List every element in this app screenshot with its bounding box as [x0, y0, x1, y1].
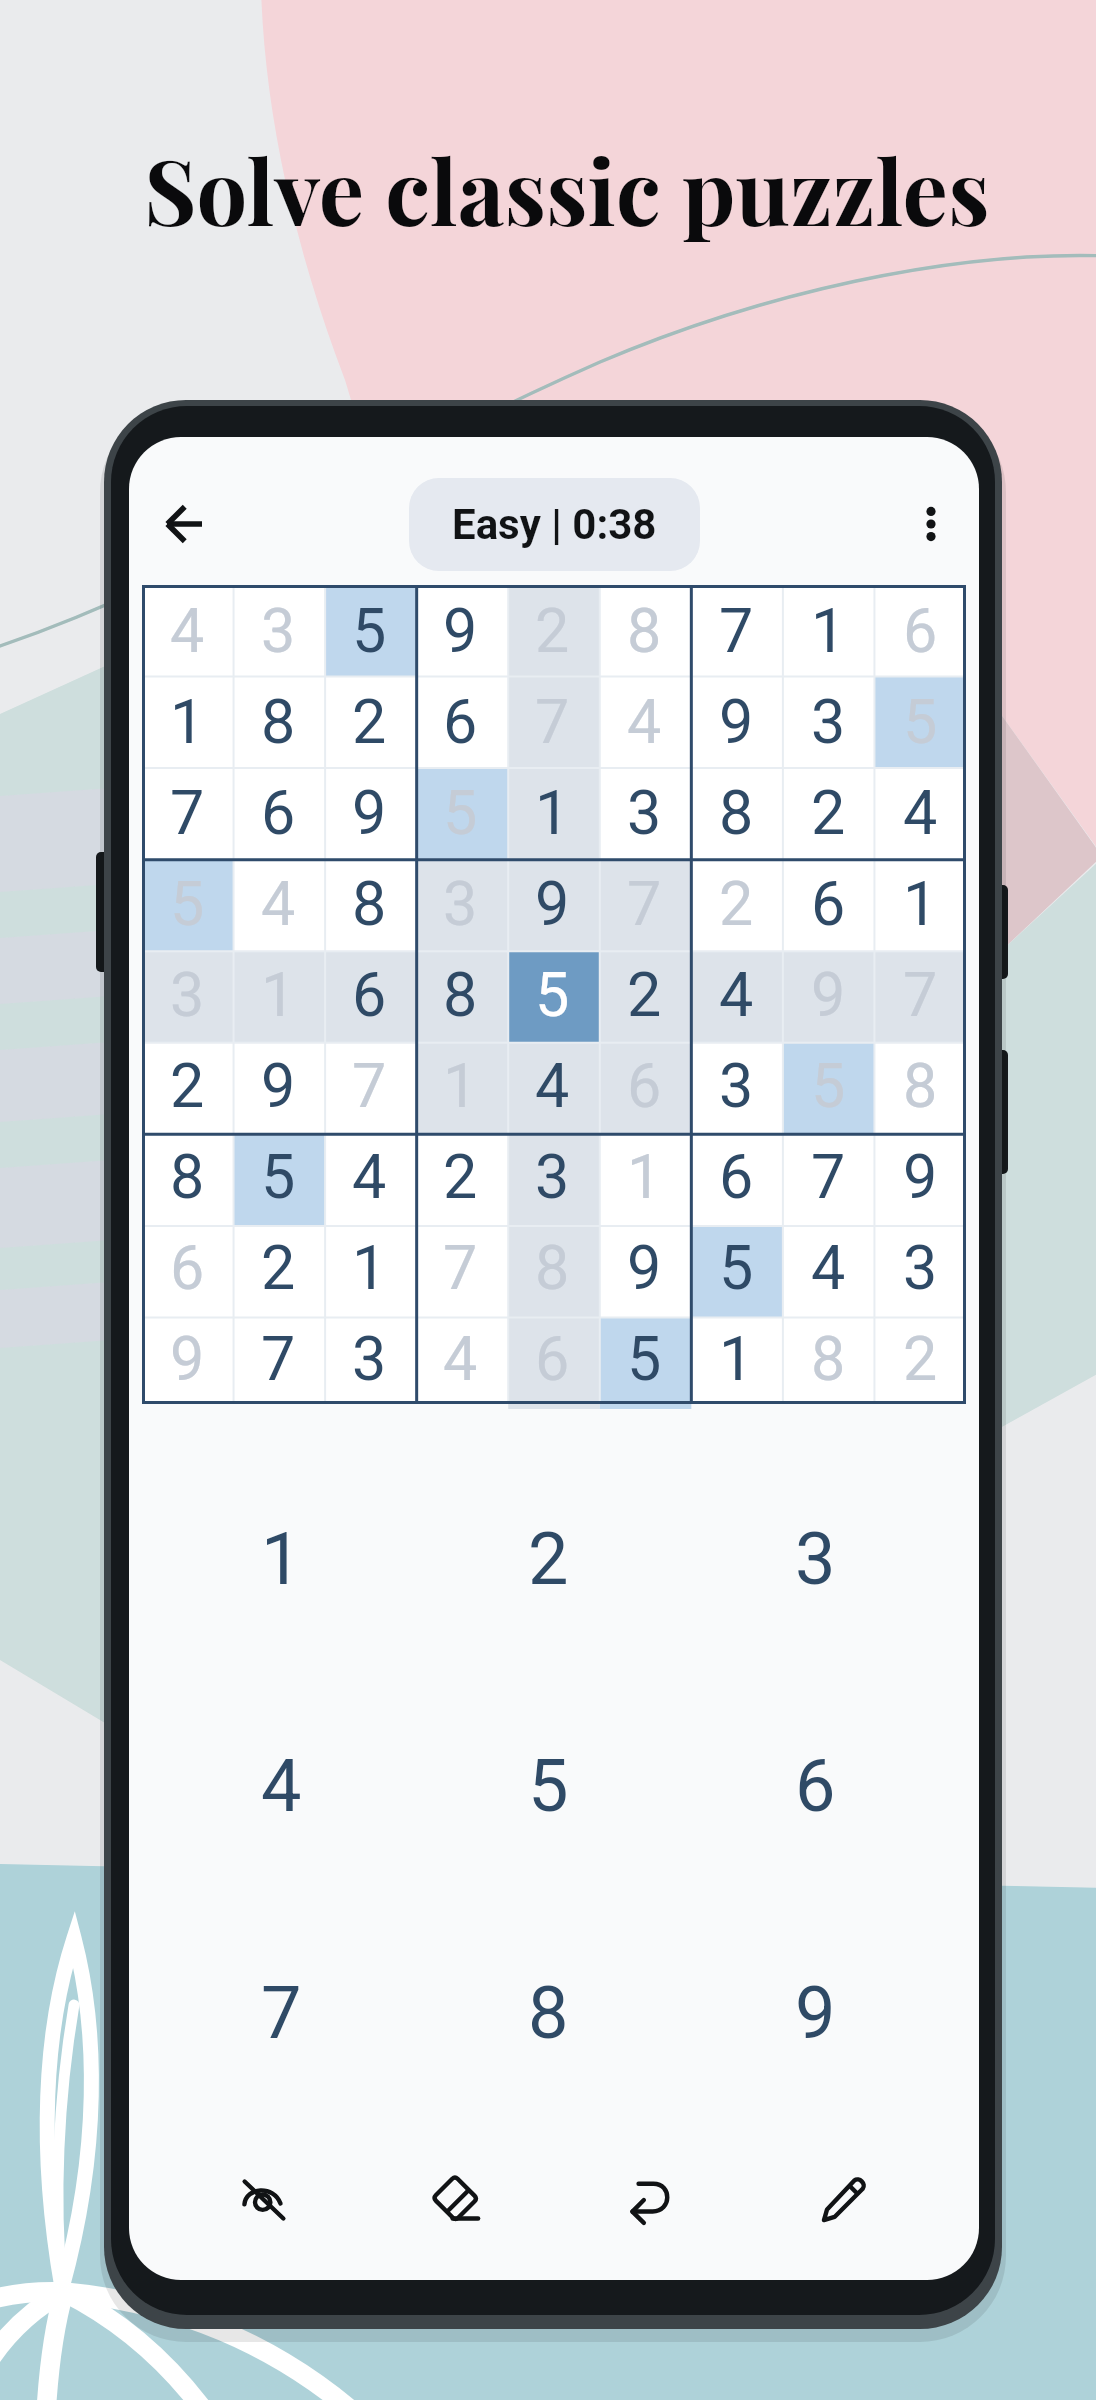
button[interactable]: 6 [415, 676, 506, 767]
button[interactable]: 1 [233, 949, 324, 1040]
button[interactable]: 1 [782, 585, 874, 676]
button[interactable]: 2 [142, 1040, 233, 1131]
button[interactable]: 7 [142, 767, 233, 858]
button[interactable]: 6 [782, 858, 874, 949]
button[interactable]: 6 [682, 1672, 949, 1899]
button[interactable]: 2 [506, 585, 598, 676]
button[interactable]: 6 [598, 1040, 690, 1131]
button[interactable]: 3 [233, 585, 324, 676]
button[interactable]: 5 [142, 858, 233, 949]
button[interactable]: 5 [415, 767, 506, 858]
button[interactable]: 9 [233, 1040, 324, 1131]
button[interactable]: 9 [682, 1899, 949, 2126]
button[interactable]: 7 [415, 1222, 506, 1313]
button[interactable]: 9 [782, 949, 874, 1040]
button[interactable]: 6 [874, 585, 966, 676]
button[interactable]: 8 [415, 1899, 682, 2126]
button[interactable]: Undo [553, 2148, 747, 2252]
button[interactable]: 3 [415, 858, 506, 949]
button[interactable]: 2 [233, 1222, 324, 1313]
button[interactable]: 4 [874, 767, 966, 858]
button[interactable]: 5 [690, 1222, 782, 1313]
button[interactable]: 5 [598, 1313, 690, 1404]
button[interactable]: 8 [690, 767, 782, 858]
button[interactable]: 8 [324, 858, 415, 949]
button[interactable]: 5 [415, 1672, 682, 1899]
button[interactable]: 4 [782, 1222, 874, 1313]
button[interactable]: 4 [142, 585, 233, 676]
button[interactable]: 7 [148, 1899, 415, 2126]
button[interactable]: 9 [506, 858, 598, 949]
button[interactable]: 4 [598, 676, 690, 767]
button[interactable]: 7 [506, 676, 598, 767]
button[interactable]: 8 [142, 1131, 233, 1222]
button[interactable]: 5 [874, 676, 966, 767]
button[interactable]: 1 [148, 1445, 415, 1672]
button[interactable]: 1 [415, 1040, 506, 1131]
staticText: 9 [261, 1050, 296, 1121]
button[interactable]: 3 [682, 1445, 949, 1672]
button[interactable]: 3 [142, 949, 233, 1040]
button[interactable]: 9 [598, 1222, 690, 1313]
staticText: 5 [535, 959, 570, 1030]
button[interactable]: 9 [415, 585, 506, 676]
button[interactable]: More options [897, 490, 965, 558]
button[interactable]: 4 [506, 1040, 598, 1131]
button[interactable]: 4 [690, 949, 782, 1040]
button[interactable]: 5 [506, 949, 598, 1040]
button[interactable]: 9 [874, 1131, 966, 1222]
button[interactable]: 2 [782, 767, 874, 858]
button[interactable]: 2 [415, 1445, 682, 1672]
button[interactable]: Hide notes [167, 2148, 360, 2252]
button[interactable]: 1 [690, 1313, 782, 1404]
button[interactable]: 8 [415, 949, 506, 1040]
button[interactable]: 8 [233, 676, 324, 767]
button[interactable]: 7 [233, 1313, 324, 1404]
button[interactable]: 8 [782, 1313, 874, 1404]
button[interactable]: 6 [690, 1131, 782, 1222]
button[interactable]: 8 [598, 585, 690, 676]
button[interactable]: 6 [233, 767, 324, 858]
button[interactable]: 3 [874, 1222, 966, 1313]
button[interactable]: 3 [598, 767, 690, 858]
button[interactable]: 9 [690, 676, 782, 767]
button[interactable]: 1 [142, 676, 233, 767]
button[interactable]: Pencil notes [747, 2148, 941, 2252]
button[interactable]: 2 [324, 676, 415, 767]
button[interactable]: 9 [142, 1313, 233, 1404]
button[interactable]: 7 [690, 585, 782, 676]
button[interactable]: 2 [415, 1131, 506, 1222]
button[interactable]: 1 [506, 767, 598, 858]
button[interactable]: 7 [324, 1040, 415, 1131]
button[interactable]: Easy | 0:38 [409, 478, 700, 571]
button[interactable]: 6 [142, 1222, 233, 1313]
button[interactable]: 1 [874, 858, 966, 949]
button[interactable]: 1 [324, 1222, 415, 1313]
button[interactable]: Erase [360, 2148, 553, 2252]
button[interactable]: Back [146, 486, 222, 562]
button[interactable]: 5 [324, 585, 415, 676]
button[interactable]: 5 [233, 1131, 324, 1222]
button[interactable]: 3 [506, 1131, 598, 1222]
button[interactable]: 1 [598, 1131, 690, 1222]
button[interactable]: 4 [148, 1672, 415, 1899]
button[interactable]: 2 [690, 858, 782, 949]
button[interactable]: 4 [415, 1313, 506, 1404]
button[interactable]: 8 [506, 1222, 598, 1313]
button[interactable]: 2 [598, 949, 690, 1040]
button[interactable]: 6 [506, 1313, 598, 1404]
button[interactable]: 5 [782, 1040, 874, 1131]
button[interactable]: 6 [324, 949, 415, 1040]
button[interactable]: 3 [690, 1040, 782, 1131]
button[interactable]: 2 [874, 1313, 966, 1404]
button[interactable]: 9 [324, 767, 415, 858]
button[interactable]: 7 [874, 949, 966, 1040]
staticText: 2 [811, 777, 846, 848]
button[interactable]: 3 [782, 676, 874, 767]
button[interactable]: 4 [233, 858, 324, 949]
button[interactable]: 8 [874, 1040, 966, 1131]
button[interactable]: 4 [324, 1131, 415, 1222]
button[interactable]: 7 [598, 858, 690, 949]
button[interactable]: 7 [782, 1131, 874, 1222]
button[interactable]: 3 [324, 1313, 415, 1404]
